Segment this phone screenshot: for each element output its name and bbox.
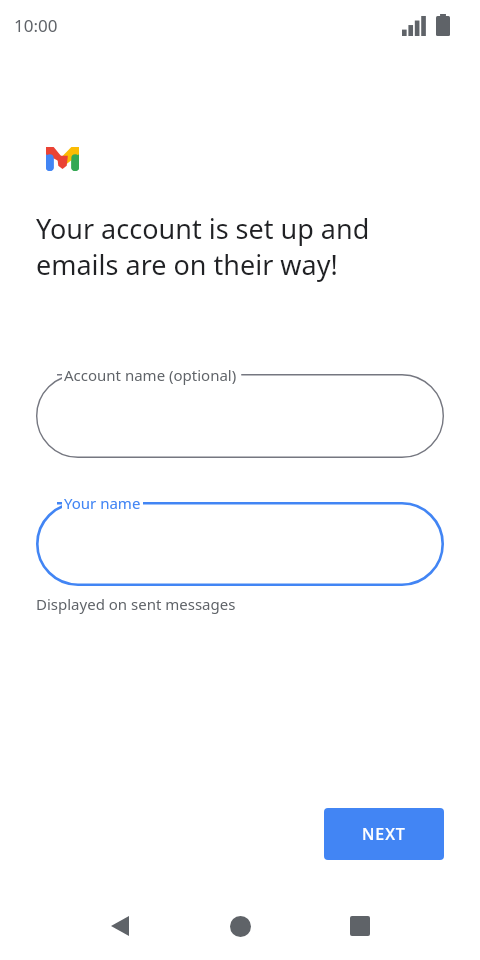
button[interactable]: Your name	[36, 502, 444, 586]
staticText: NEXT	[362, 823, 406, 845]
staticText: Your name	[64, 493, 141, 513]
button[interactable]: NEXT	[324, 808, 444, 860]
staticText: Your account is set up and emails are on…	[36, 210, 436, 283]
staticText: 10:00	[14, 14, 58, 37]
button[interactable]: Back	[104, 910, 136, 942]
button[interactable]: Home	[224, 910, 256, 942]
staticText: Account name (optional)	[64, 365, 237, 385]
button[interactable]: Recent apps	[344, 910, 376, 942]
staticText: Displayed on sent messages	[36, 594, 236, 614]
button[interactable]: Account name (optional)	[36, 374, 444, 458]
